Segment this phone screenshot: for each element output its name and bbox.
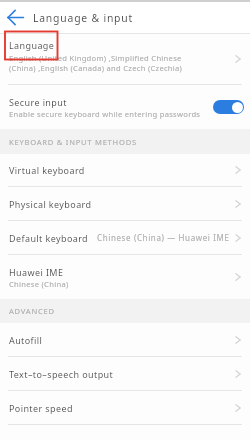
- button[interactable]: Autofill: [0, 323, 250, 356]
- button[interactable]: Default keyboard: [0, 221, 250, 254]
- staticText: English (United Kingdom) ,Simplified Chi…: [9, 53, 183, 73]
- staticText: Huawei IME: [9, 266, 64, 278]
- button[interactable]: Virtual keyboard: [0, 154, 250, 186]
- staticText: Autofill: [9, 334, 43, 346]
- button[interactable]: Language: [0, 34, 250, 84]
- staticText: Language: [9, 39, 55, 51]
- button[interactable]: Back: [0, 2, 31, 33]
- staticText: Secure input: [9, 96, 67, 108]
- button[interactable]: Text–to–speech output: [0, 357, 250, 390]
- button[interactable]: Physical keyboard: [0, 187, 250, 220]
- button[interactable]: Pointer speed: [0, 391, 250, 424]
- button[interactable]: Secure input: [0, 85, 250, 129]
- staticText: Chinese (China): [9, 279, 69, 289]
- staticText: Chinese (China) — Huawei IME: [97, 232, 230, 243]
- staticText: KEYBOARD & INPUT METHODS: [9, 137, 137, 147]
- staticText: Text–to–speech output: [9, 368, 114, 380]
- staticText: Enable secure keyboard while entering pa…: [9, 109, 201, 119]
- staticText: ADVANCED: [9, 306, 55, 316]
- button[interactable]: Huawei IME: [0, 255, 250, 299]
- staticText: Pointer speed: [9, 402, 73, 414]
- staticText: Language & input: [33, 11, 134, 25]
- staticText: Default keyboard: [9, 232, 89, 244]
- staticText: Physical keyboard: [9, 198, 92, 210]
- staticText: Virtual keyboard: [9, 164, 85, 176]
